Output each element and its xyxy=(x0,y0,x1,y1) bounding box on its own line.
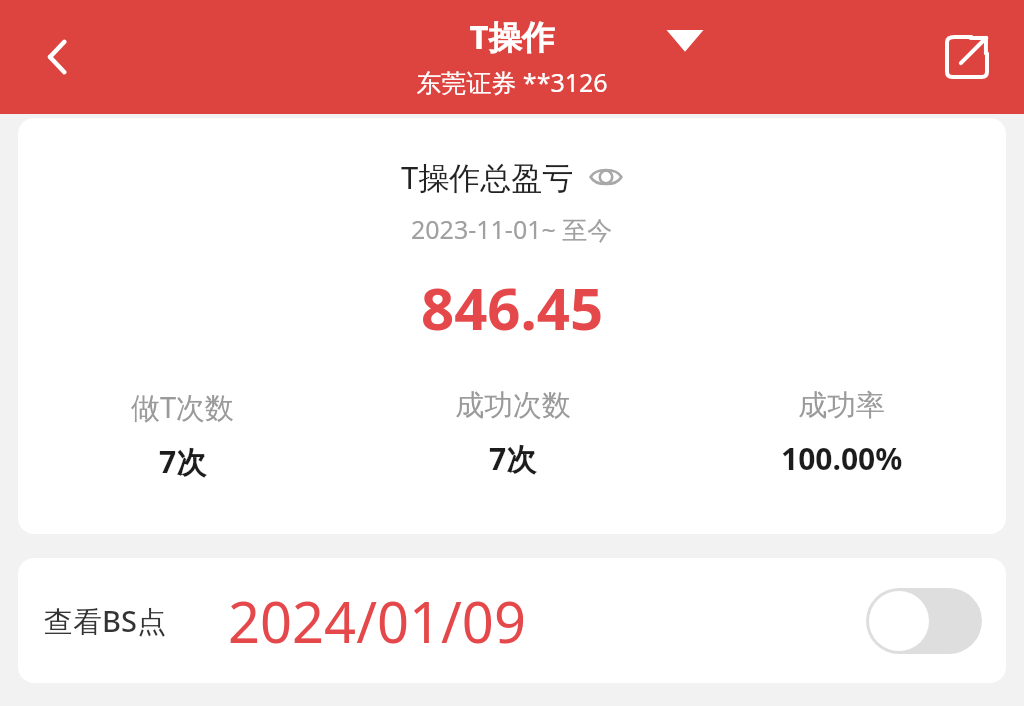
staticText: 东莞证券 **3126 xyxy=(416,65,608,99)
staticText: 7次 xyxy=(489,438,537,479)
button[interactable]: T操作总盈亏 xyxy=(401,156,624,198)
staticText: 成功次数 xyxy=(455,387,571,424)
button[interactable]: 做T次数 xyxy=(18,387,348,482)
staticText: 2024/01/09 xyxy=(228,583,526,659)
staticText: 846.45 xyxy=(421,268,604,347)
button[interactable]: Switch account xyxy=(645,12,725,68)
staticText: 查看BS点 xyxy=(44,601,166,641)
staticText: 7次 xyxy=(159,441,207,482)
button[interactable]: Toggle BS points xyxy=(866,588,982,654)
button[interactable]: Share xyxy=(924,14,1010,100)
staticText: 100.00% xyxy=(781,438,903,479)
button[interactable]: 成功率 xyxy=(677,387,1006,479)
staticText: T操作总盈亏 xyxy=(401,156,574,198)
button[interactable]: 查看BS点 xyxy=(18,558,1006,683)
button[interactable]: Back xyxy=(14,13,102,101)
staticText: 2023-11-01~ 至今 xyxy=(411,212,613,246)
staticText: T操作 xyxy=(469,14,555,59)
button[interactable]: 成功次数 xyxy=(348,387,677,479)
staticText: 做T次数 xyxy=(131,387,235,427)
staticText: 成功率 xyxy=(798,387,885,424)
